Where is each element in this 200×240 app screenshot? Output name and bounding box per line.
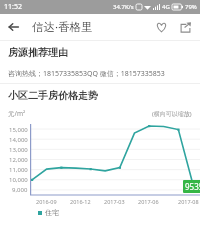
staticText: 房源推荐理由 [8,46,68,59]
staticText: 13,000 [9,146,28,154]
button[interactable]: Favorite [149,15,173,39]
staticText: 34.7K/s [113,3,134,11]
staticText: 信达·香格里 [32,19,93,35]
staticText: 9535 [185,181,200,192]
staticText: 9,000 [12,186,28,194]
staticText: 元/m² [8,109,26,118]
staticText: 12,000 [9,156,28,164]
staticText: 2017-03 [104,198,125,205]
staticText: 小区二手房价格走势 [8,89,98,102]
staticText: 11:52 [4,2,22,12]
staticText: 住宅 [45,208,59,217]
button[interactable]: Back [0,14,26,40]
staticText: 14,000 [9,136,28,144]
staticText: 10,000 [9,176,28,184]
button[interactable]: Share [173,15,197,39]
staticText: 2017-08 [178,198,199,205]
staticText: 2016-09 [36,198,57,205]
staticText: 2017-06 [138,198,159,205]
button[interactable]: 9535 [183,180,200,193]
staticText: (横向可以缩放) [152,110,192,118]
staticText: 11,000 [9,166,28,174]
staticText: 咨询热线；18157335853QQ 微信；18157335853 [8,69,165,79]
staticText: 2016-12 [70,198,91,205]
staticText: 79% [185,3,197,11]
staticText: 4G [162,3,170,11]
staticText: 15,000 [9,126,28,134]
